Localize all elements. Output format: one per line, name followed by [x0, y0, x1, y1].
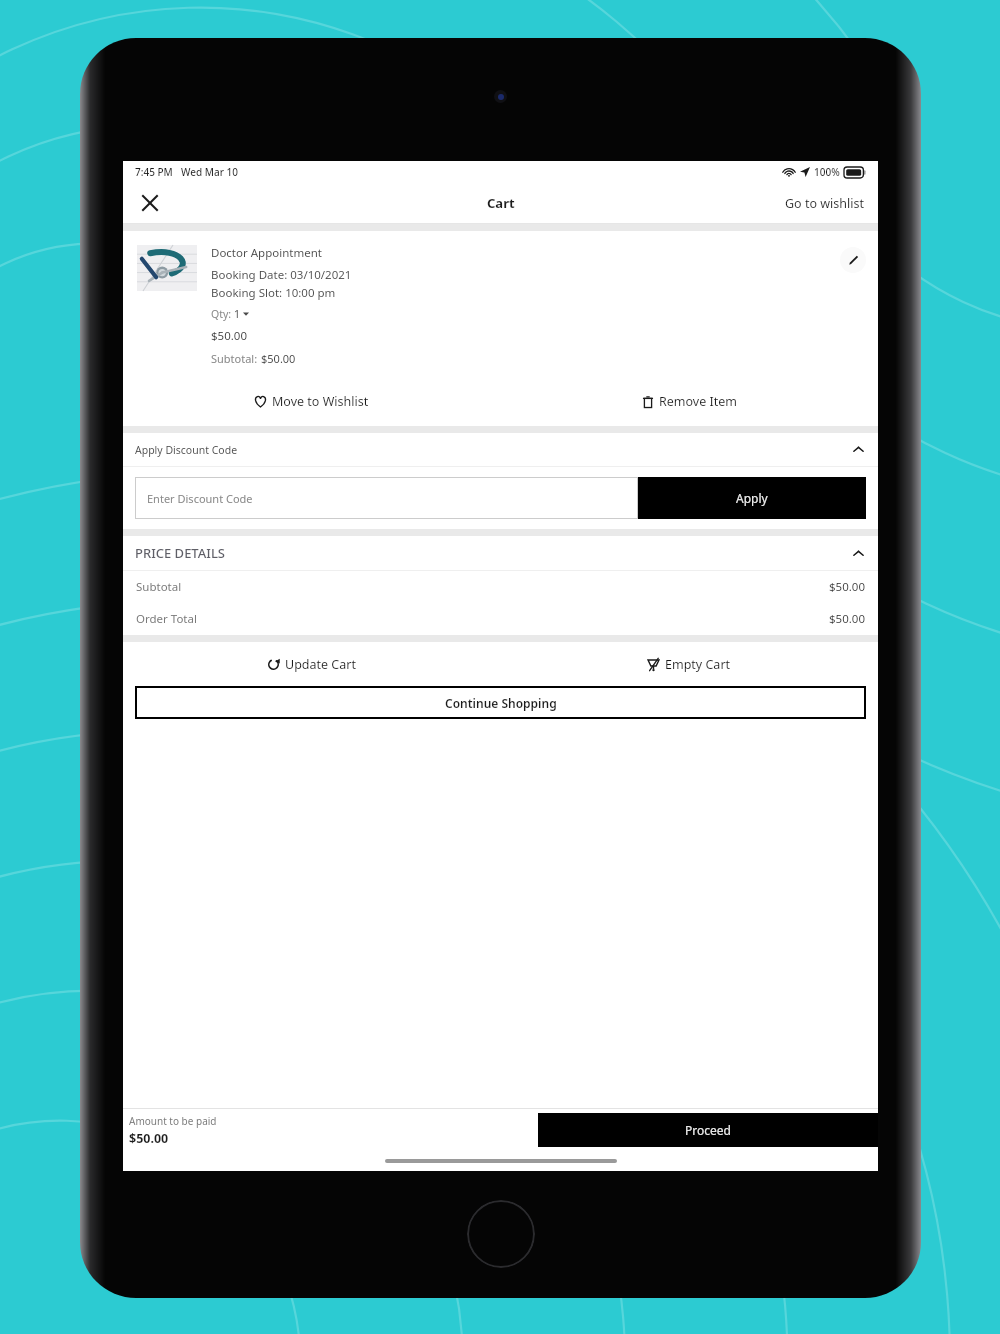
staticText: Cart [487, 194, 515, 212]
staticText: Order Total [136, 611, 197, 627]
staticText: Update Cart [285, 656, 356, 673]
staticText: $50.00 [129, 1130, 169, 1147]
button[interactable]: Apply Discount Code [123, 433, 878, 466]
staticText: $50.00 [829, 611, 865, 627]
button[interactable]: PRICE DETAILS [123, 536, 878, 570]
staticText: Subtotal [136, 579, 182, 595]
staticText: Subtotal: [211, 351, 261, 366]
staticText: Apply Discount Code [135, 443, 238, 457]
staticText: Qty: [211, 307, 234, 321]
staticText: Amount to be paid [129, 1114, 217, 1128]
staticText: 1 [234, 307, 241, 321]
button[interactable]: Move to Wishlist [123, 384, 500, 418]
staticText: Continue Shopping [445, 695, 557, 711]
staticText: Go to wishlist [785, 195, 864, 212]
button[interactable]: Proceed [538, 1113, 878, 1147]
staticText: Proceed [685, 1122, 731, 1138]
staticText: Empty Cart [665, 656, 731, 673]
staticText: $50.00 [261, 351, 296, 366]
button[interactable]: Close [133, 186, 167, 220]
staticText: Move to Wishlist [272, 393, 369, 410]
staticText: Booking Slot: 10:00 pm [211, 285, 336, 301]
staticText: Remove Item [659, 393, 737, 410]
staticText: PRICE DETAILS [135, 544, 225, 562]
staticText: Doctor Appointment [211, 245, 322, 261]
button[interactable]: Update Cart [123, 642, 500, 686]
staticText: Wed Mar 10 [181, 165, 238, 179]
button[interactable]: Apply [638, 477, 866, 519]
button[interactable]: Edit item [840, 247, 866, 273]
staticText: 100% [814, 165, 840, 179]
staticText: 7:45 PM [135, 165, 173, 179]
staticText: Enter Discount Code [147, 491, 253, 506]
staticText: Booking Date: 03/10/2021 [211, 267, 352, 283]
staticText: Apply [736, 490, 768, 506]
button[interactable]: Enter Discount Code [135, 477, 638, 519]
button[interactable]: Continue Shopping [135, 686, 866, 719]
staticText: $50.00 [211, 328, 247, 344]
staticText: $50.00 [829, 579, 865, 595]
button[interactable]: Remove Item [500, 384, 878, 418]
button[interactable]: Go to wishlist [785, 195, 864, 212]
button[interactable]: Empty Cart [500, 642, 878, 686]
